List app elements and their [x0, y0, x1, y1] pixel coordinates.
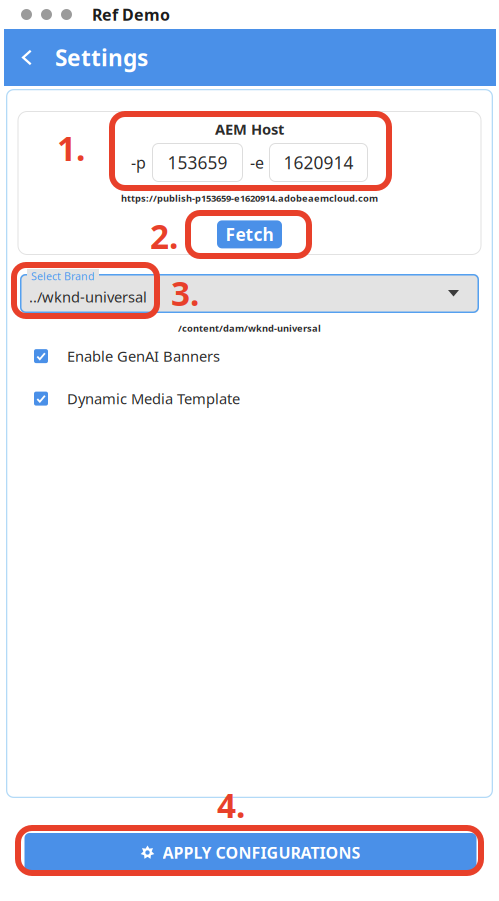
staticText: -p [131, 152, 146, 173]
staticText: Fetch [225, 223, 273, 246]
staticText: /content/dam/wknd-universal [178, 322, 321, 334]
button[interactable]: Dynamic Media Template [34, 389, 493, 408]
staticText: https://publish-p153659-e1620914.adobeae… [121, 192, 378, 204]
staticText: Settings [55, 42, 148, 72]
staticText: APPLY CONFIGURATIONS [162, 842, 360, 863]
staticText: -e [250, 152, 264, 173]
staticText: Ref Demo [92, 4, 170, 25]
staticText: Dynamic Media Template [67, 389, 240, 408]
button[interactable]: Fetch [217, 220, 282, 248]
staticText: 2. [150, 214, 178, 258]
staticText: 1. [57, 126, 85, 170]
staticText: 1620914 [283, 151, 353, 174]
staticText: Select Brand [31, 269, 95, 283]
staticText: ../wknd-universal [29, 287, 147, 306]
staticText: Enable GenAI Banners [67, 346, 220, 366]
button[interactable]: Enable GenAI Banners [34, 346, 493, 366]
button[interactable]: Back [6, 32, 48, 82]
button[interactable]: APPLY CONFIGURATIONS [24, 833, 476, 872]
staticText: 4. [217, 783, 245, 827]
staticText: 3. [171, 271, 199, 315]
staticText: 153659 [167, 151, 227, 174]
button[interactable]: ../wknd-universal [20, 274, 479, 313]
staticText: AEM Host [215, 119, 284, 139]
